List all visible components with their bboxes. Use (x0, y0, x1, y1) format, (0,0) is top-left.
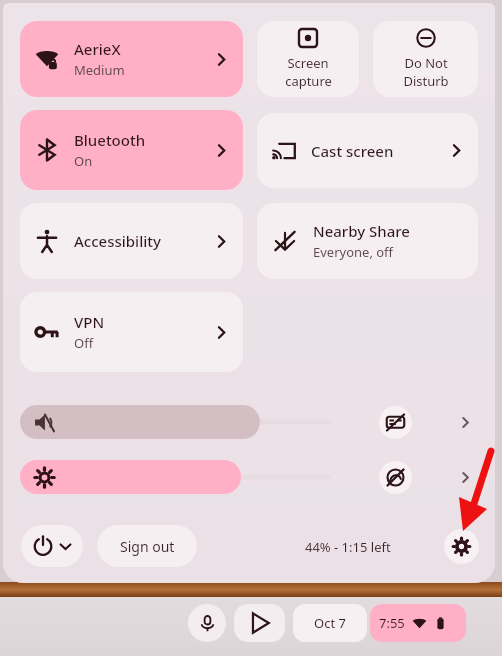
staticText: Screen (287, 54, 329, 72)
staticText: On (74, 152, 93, 170)
button[interactable]: Power options (21, 525, 83, 567)
button[interactable]: Settings (444, 529, 479, 564)
staticText: Medium (74, 61, 125, 79)
button[interactable]: Audio settings (379, 406, 412, 439)
staticText: Bluetooth (74, 130, 146, 150)
staticText: VPN (74, 312, 105, 332)
button[interactable]: Nearby Share (257, 203, 478, 279)
staticText: Everyone, off (313, 243, 394, 261)
button[interactable]: VPN (20, 292, 243, 372)
staticText: Disturb (403, 72, 449, 90)
button[interactable]: Accessibility (20, 203, 243, 279)
staticText: Sign out (120, 537, 175, 556)
staticText: Off (74, 334, 94, 352)
staticText: 44% - 1:15 left (305, 538, 391, 556)
button[interactable]: Volume (20, 404, 68, 440)
staticText: capture (285, 72, 332, 90)
staticText: Nearby Share (313, 221, 410, 241)
button[interactable]: Screen (257, 21, 359, 97)
staticText: Cast screen (311, 141, 449, 161)
button[interactable]: Cast screen (257, 113, 478, 188)
button[interactable]: Do Not (373, 21, 478, 97)
staticText: Oct 7 (314, 614, 346, 632)
staticText: Do Not (404, 54, 448, 72)
button[interactable]: 7:55 (370, 604, 466, 642)
button[interactable]: Bluetooth (20, 110, 243, 190)
button[interactable]: More (452, 409, 478, 435)
button[interactable]: Launcher (234, 604, 285, 642)
button[interactable]: Brightness (20, 459, 68, 495)
staticText: Accessibility (74, 231, 214, 251)
button[interactable]: More (452, 464, 478, 490)
button[interactable]: Oct 7 (293, 604, 367, 642)
button[interactable]: Assistant (188, 604, 226, 642)
button[interactable]: Display settings (379, 461, 412, 494)
staticText: 7:55 (379, 614, 405, 632)
button[interactable]: AerieX (20, 21, 243, 97)
button[interactable]: Sign out (97, 525, 197, 567)
staticText: AerieX (74, 39, 121, 59)
